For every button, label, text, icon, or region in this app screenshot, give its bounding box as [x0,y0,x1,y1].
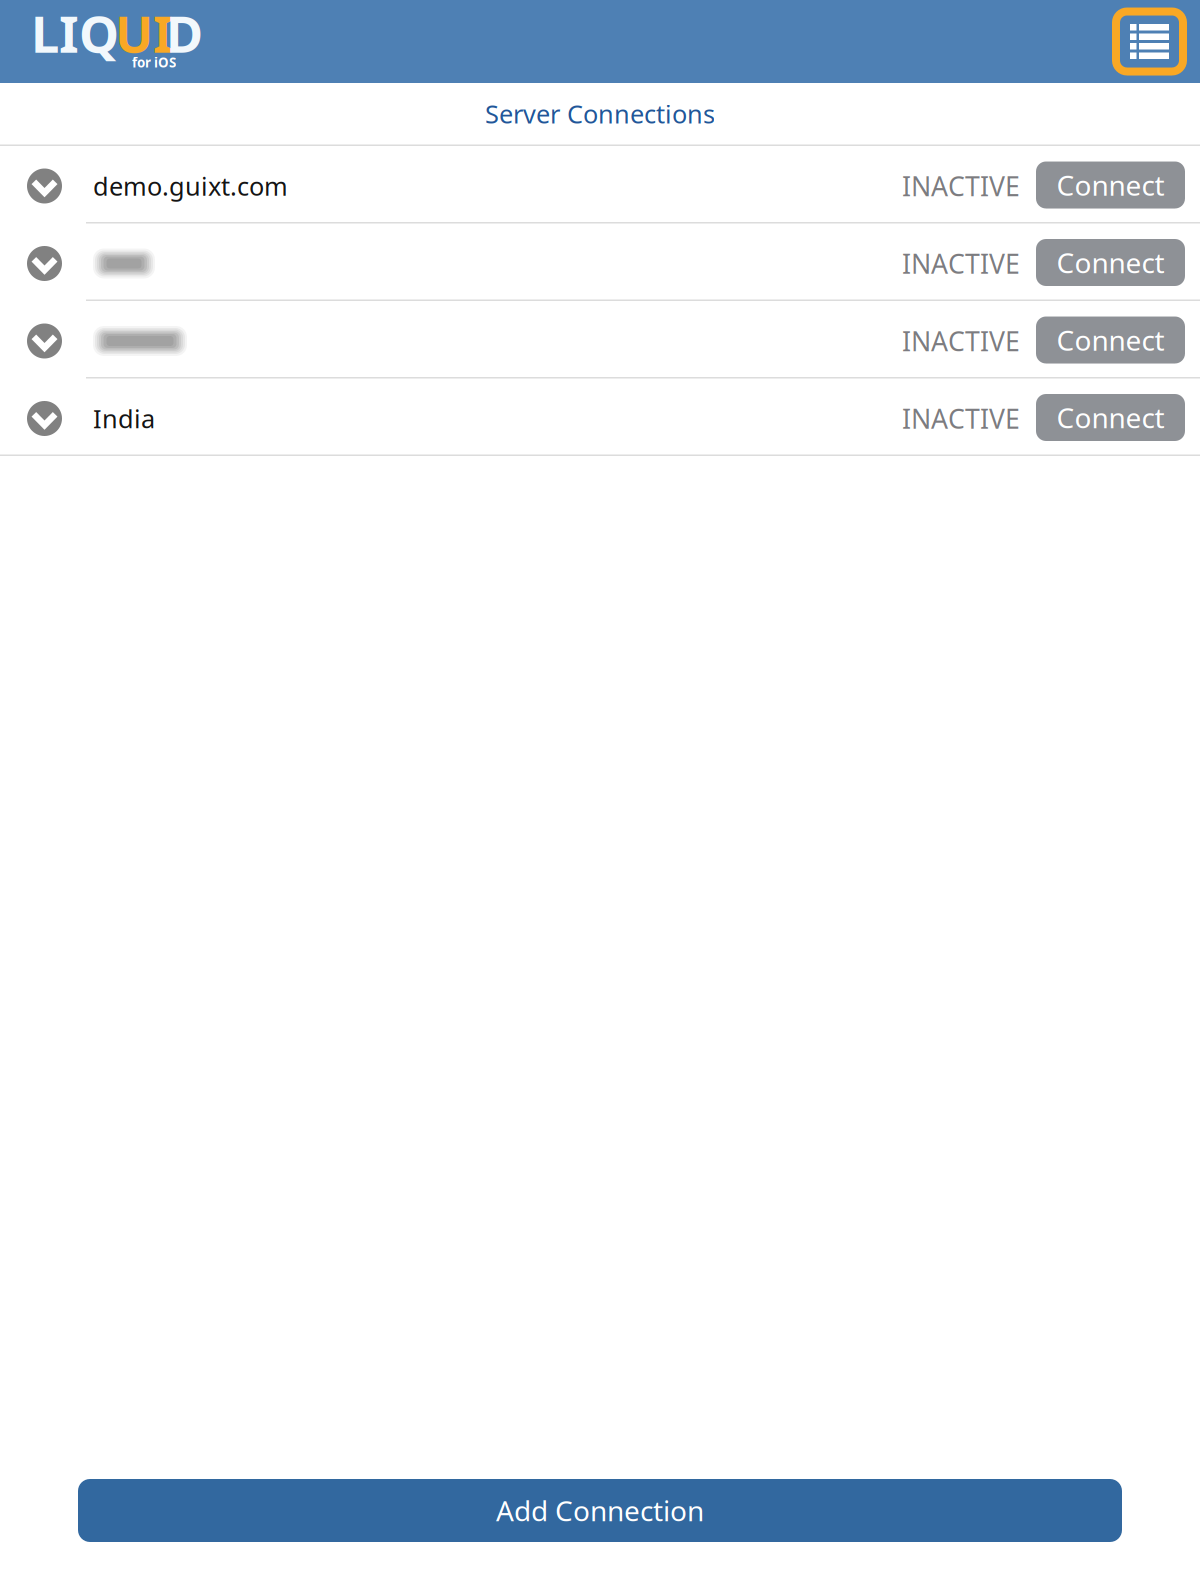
staticText: INACTIVE [902,401,1020,436]
staticText: Connect [1056,244,1164,281]
staticText: Connect [1056,321,1164,359]
button[interactable]: Expand server [0,223,93,299]
staticText: INACTIVE [902,246,1020,281]
staticText: INACTIVE [902,168,1020,204]
staticText: UI [115,0,173,67]
staticText: for iOS [132,53,176,71]
button[interactable]: Expand demo.guixt.com [0,146,93,222]
button[interactable]: Connect [1036,394,1185,441]
staticText: Connect [1056,399,1164,436]
button[interactable]: Expand India [0,378,93,454]
staticText: LIQ [31,0,119,67]
staticText: Add Connection [496,1492,704,1529]
staticText: Server Connections [485,97,715,130]
staticText: demo.guixt.com [93,169,288,203]
button[interactable]: Add Connection [78,1479,1122,1542]
button[interactable]: Expand server [0,301,93,377]
button[interactable]: Connect [1036,316,1185,363]
staticText: D [166,0,203,67]
staticText: Connect [1056,166,1164,204]
button[interactable]: Connect [1036,239,1185,286]
button[interactable]: Connect [1036,161,1185,208]
staticText: INACTIVE [902,323,1020,359]
button[interactable]: Menu [1112,7,1187,75]
staticText: India [93,402,155,435]
